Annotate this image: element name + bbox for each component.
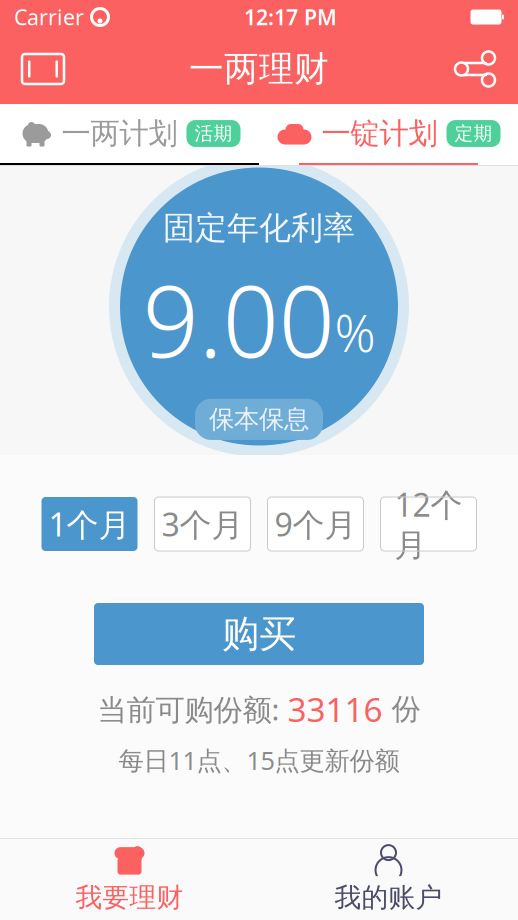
staticText: 保本保息	[209, 404, 309, 435]
staticText: 33116	[287, 687, 382, 731]
button[interactable]: 我要理财	[0, 839, 259, 919]
button[interactable]: 一锭计划	[259, 104, 518, 166]
staticText: 份	[382, 691, 420, 727]
button[interactable]: 消息	[12, 38, 74, 100]
staticText: 一两理财	[189, 48, 329, 90]
button[interactable]: 一两计划	[0, 104, 259, 166]
staticText: 我的账户	[334, 881, 442, 914]
staticText: 定期	[454, 122, 492, 145]
staticText: Carrier	[14, 3, 84, 31]
button[interactable]: 我的账户	[259, 839, 518, 919]
staticText: 当前可购份额:	[97, 690, 287, 729]
staticText: 12:17 PM	[244, 3, 337, 31]
staticText: 12个月	[394, 483, 462, 565]
button[interactable]: 1个月	[41, 497, 137, 551]
button[interactable]: 12个月	[380, 497, 476, 551]
button[interactable]: 9个月	[267, 497, 363, 551]
button[interactable]: 购买	[94, 603, 424, 665]
button[interactable]: 分享	[444, 38, 506, 100]
staticText: 1个月	[48, 503, 130, 545]
staticText: 购买	[222, 611, 296, 657]
staticText: 固定年化利率	[163, 208, 355, 248]
staticText: 每日11点、15点更新份额	[118, 743, 399, 777]
staticText: 一锭计划	[321, 115, 437, 151]
staticText: 我要理财	[75, 881, 183, 914]
staticText: %	[334, 299, 375, 366]
staticText: 9个月	[274, 503, 356, 545]
staticText: 9.00	[142, 254, 334, 385]
staticText: 3个月	[161, 503, 243, 545]
button[interactable]: 3个月	[154, 497, 250, 551]
staticText: 一两计划	[61, 115, 177, 151]
staticText: 活期	[194, 122, 232, 145]
